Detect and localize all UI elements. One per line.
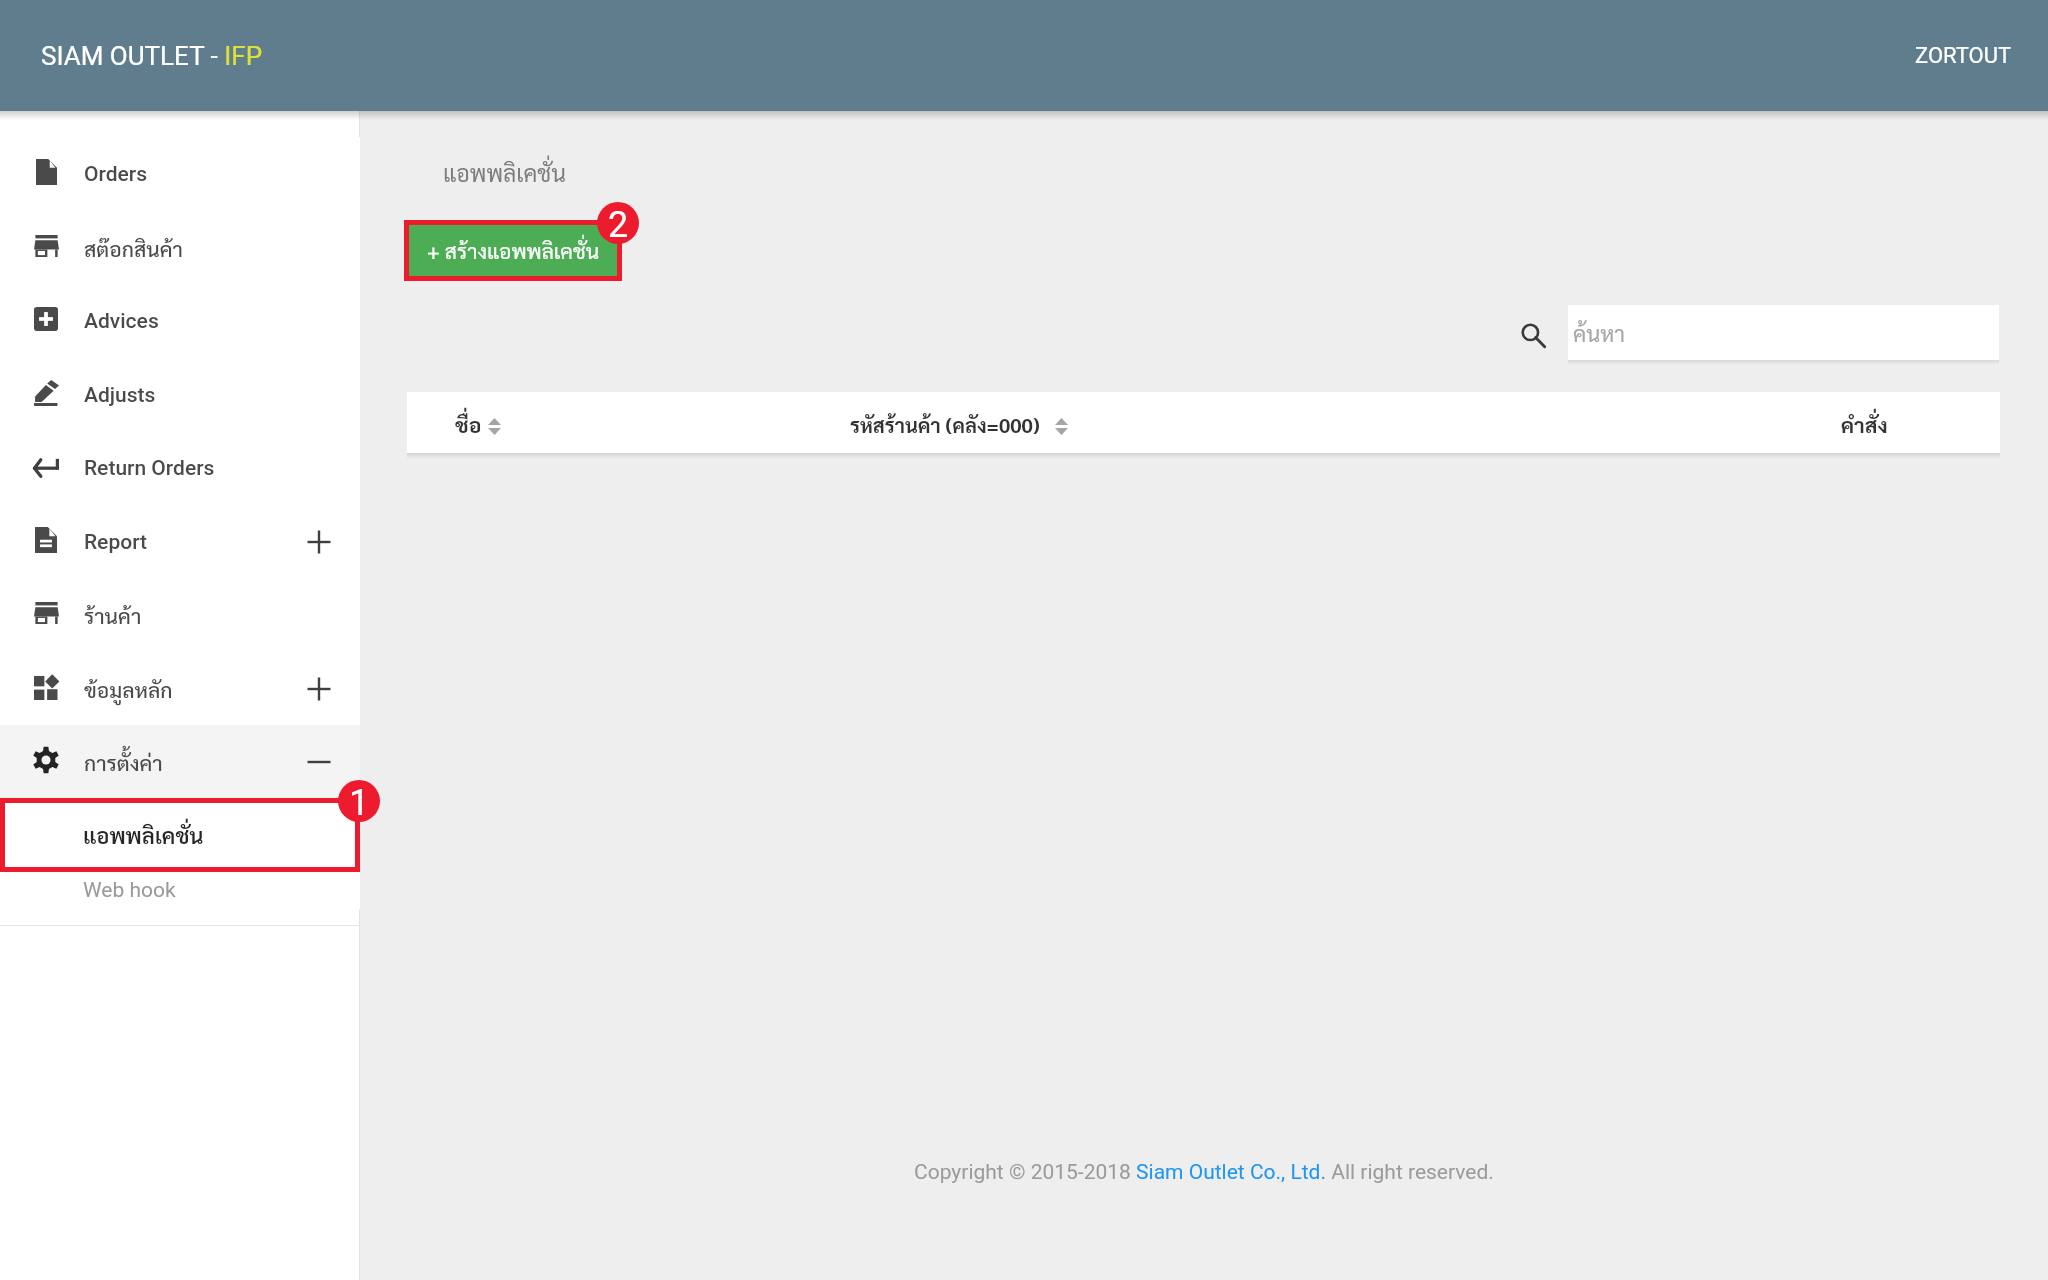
button[interactable]: Return Orders (0, 431, 360, 505)
staticText: Adjusts (84, 383, 156, 408)
button[interactable]: + สร้างแอพพลิเคชั่น (409, 225, 617, 276)
button[interactable]: แอพพลิเคชั่น (0, 798, 360, 872)
button[interactable]: Report (0, 505, 360, 579)
staticText: ZORTOUT (1915, 43, 2012, 69)
button[interactable]: ข้อมูลหลัก (0, 652, 360, 726)
staticText: แอพพลิเคชั่น (83, 821, 204, 850)
staticText: คำสั่ง (1841, 411, 1888, 438)
button[interactable]: Orders (0, 137, 360, 211)
staticText: การตั้งค่า (84, 749, 163, 776)
staticText: 2 (608, 204, 629, 244)
button[interactable]: Step 1 (338, 780, 380, 822)
button[interactable]: การตั้งค่า (0, 725, 360, 799)
button[interactable]: Web hook (0, 872, 360, 909)
button[interactable]: Step 2 (597, 202, 639, 244)
button[interactable]: ZORTOUT (1915, 43, 2012, 69)
staticText: Copyright © 2015-2018 Siam Outlet Co., L… (914, 1160, 1494, 1185)
staticText: แอพพลิเคชั่น (443, 157, 566, 187)
staticText: ร้านค้า (84, 602, 142, 629)
staticText: Report (84, 530, 148, 555)
staticText: ค้นหา (1573, 319, 1625, 348)
button[interactable]: SIAM OUTLET - IFP (41, 41, 263, 71)
staticText: + สร้างแอพพลิเคชั่น (427, 237, 600, 264)
staticText: สต๊อกสินค้า (84, 235, 183, 262)
staticText: ข้อมูลหลัก (84, 676, 173, 703)
button[interactable]: Adjusts (0, 358, 360, 432)
button[interactable]: ร้านค้า (0, 578, 360, 652)
staticText: Advices (84, 309, 159, 334)
button[interactable]: รหัสร้านค้า (คลัง=000) (850, 394, 1068, 455)
staticText: ชื่อ (455, 411, 482, 438)
staticText: Return Orders (84, 456, 215, 481)
button[interactable]: สต๊อกสินค้า (0, 211, 360, 285)
staticText: 1 (349, 782, 370, 822)
button[interactable]: ค้นหา (1568, 305, 1999, 360)
staticText: SIAM OUTLET - IFP (41, 41, 263, 71)
button[interactable]: ชื่อ (455, 394, 501, 455)
button[interactable]: Advices (0, 284, 360, 358)
staticText: รหัสร้านค้า (คลัง=000) (850, 412, 1040, 438)
staticText: Orders (84, 162, 148, 187)
button[interactable]: Search (1520, 322, 1546, 348)
staticText: Web hook (83, 878, 176, 903)
